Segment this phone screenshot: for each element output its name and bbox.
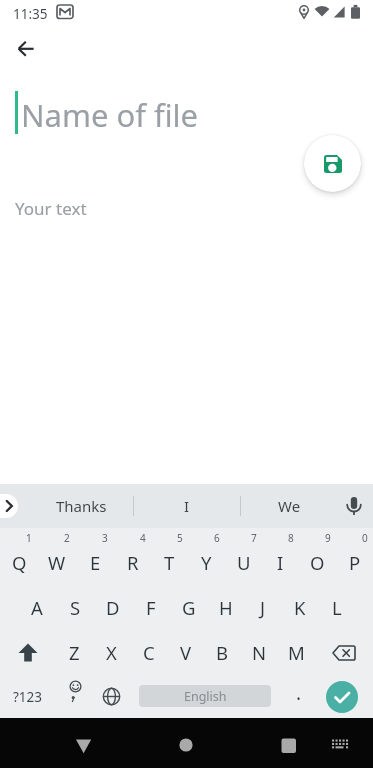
staticText: 0 <box>362 531 368 545</box>
button[interactable]: I <box>262 528 299 585</box>
button[interactable] <box>0 484 30 528</box>
staticText: M <box>288 640 305 665</box>
button[interactable] <box>264 718 312 768</box>
button[interactable] <box>56 675 93 718</box>
button[interactable]: Y <box>188 528 225 585</box>
staticText: I <box>277 550 284 575</box>
button[interactable]: R <box>114 528 151 585</box>
staticText: Q <box>12 550 27 575</box>
button[interactable] <box>317 675 373 718</box>
button[interactable]: X <box>93 630 130 675</box>
staticText: 11:35 <box>13 5 48 23</box>
button[interactable]: O <box>299 528 336 585</box>
button[interactable] <box>337 484 373 528</box>
staticText: ?123 <box>13 688 43 706</box>
staticText: 1 <box>26 531 32 545</box>
staticText: 8 <box>288 531 294 545</box>
button[interactable]: P <box>336 528 373 585</box>
staticText: 7 <box>251 531 257 545</box>
button[interactable]: G <box>170 585 207 630</box>
staticText: S <box>70 595 81 620</box>
button[interactable]: ?123 <box>0 675 56 718</box>
button[interactable]: U <box>225 528 262 585</box>
button[interactable] <box>0 494 18 518</box>
staticText: D <box>106 595 120 620</box>
staticText: 4 <box>140 531 146 545</box>
button[interactable]: I <box>134 484 240 528</box>
button[interactable] <box>326 718 356 768</box>
button[interactable]: M <box>278 630 315 675</box>
staticText: K <box>294 595 306 620</box>
button[interactable]: Q <box>0 528 38 585</box>
button[interactable]: . <box>280 675 317 718</box>
button[interactable] <box>0 630 56 675</box>
button[interactable]: Thanks <box>30 484 133 528</box>
button[interactable]: D <box>94 585 132 630</box>
staticText: O <box>310 550 325 575</box>
button[interactable] <box>315 630 373 675</box>
button[interactable] <box>304 135 361 192</box>
staticText: B <box>216 640 229 665</box>
staticText: . <box>296 680 302 706</box>
staticText: V <box>180 640 192 665</box>
staticText: I <box>184 496 190 516</box>
button[interactable] <box>93 675 130 718</box>
button[interactable] <box>10 33 42 65</box>
staticText: English <box>184 688 227 705</box>
staticText: X <box>106 640 117 665</box>
button[interactable]: J <box>244 585 281 630</box>
button[interactable]: We <box>241 484 337 528</box>
staticText: H <box>219 595 233 620</box>
staticText: P <box>349 550 361 575</box>
button[interactable]: S <box>56 585 94 630</box>
staticText: J <box>260 595 266 620</box>
staticText: 9 <box>325 531 331 545</box>
button[interactable]: H <box>207 585 244 630</box>
staticText: N <box>252 640 267 665</box>
staticText: W <box>48 550 66 575</box>
staticText: G <box>182 595 196 620</box>
button[interactable]: V <box>167 630 204 675</box>
staticText: U <box>237 550 251 575</box>
staticText: C <box>143 640 155 665</box>
staticText: Thanks <box>56 496 107 516</box>
button[interactable]: W <box>38 528 76 585</box>
button[interactable]: T <box>151 528 188 585</box>
staticText: 3 <box>102 531 108 545</box>
staticText: Y <box>201 550 212 575</box>
staticText: T <box>164 550 175 575</box>
staticText: Z <box>69 640 80 665</box>
staticText: L <box>332 595 342 620</box>
staticText: 2 <box>64 531 70 545</box>
staticText: Your text <box>15 197 87 220</box>
button[interactable] <box>60 718 108 768</box>
button[interactable]: C <box>130 630 167 675</box>
staticText: R <box>127 550 139 575</box>
button[interactable]: E <box>76 528 114 585</box>
button[interactable]: F <box>132 585 170 630</box>
button[interactable]: N <box>241 630 278 675</box>
button[interactable]: L <box>318 585 355 630</box>
button[interactable]: Z <box>56 630 93 675</box>
staticText: Name of file <box>21 94 199 136</box>
staticText: 6 <box>214 531 220 545</box>
staticText: E <box>90 550 101 575</box>
button[interactable]: B <box>204 630 241 675</box>
staticText: F <box>146 595 156 620</box>
staticText: We <box>278 496 301 516</box>
button[interactable]: K <box>281 585 318 630</box>
button[interactable]: English <box>130 675 280 718</box>
button[interactable] <box>162 718 210 768</box>
staticText: 5 <box>177 531 183 545</box>
button[interactable]: A <box>18 585 56 630</box>
staticText: A <box>31 595 43 620</box>
